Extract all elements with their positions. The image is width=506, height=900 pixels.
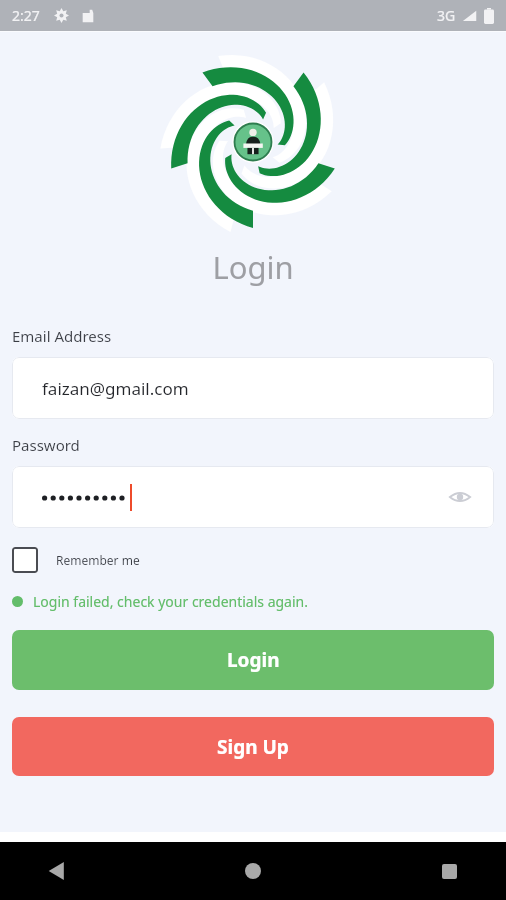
button[interactable]: Recent apps bbox=[426, 848, 472, 894]
button[interactable]: Show password bbox=[12, 466, 494, 528]
button[interactable]: Show password bbox=[445, 482, 475, 512]
staticText: 3G bbox=[437, 6, 456, 25]
staticText: Login failed, check your credentials aga… bbox=[33, 592, 308, 611]
button[interactable]: faizan@gmail.com bbox=[12, 357, 494, 419]
staticText: Login bbox=[0, 246, 506, 288]
staticText: Email Address bbox=[12, 326, 112, 346]
button[interactable]: Back bbox=[34, 848, 80, 894]
staticText: 2:27 bbox=[12, 6, 40, 25]
staticText: faizan@gmail.com bbox=[42, 377, 189, 400]
button[interactable]: Remember me bbox=[12, 547, 140, 573]
staticText: Sign Up bbox=[217, 734, 289, 760]
staticText: Login bbox=[227, 647, 280, 673]
staticText: Remember me bbox=[56, 552, 140, 568]
button[interactable]: Sign Up bbox=[12, 717, 494, 776]
staticText: Password bbox=[12, 435, 80, 455]
button[interactable]: Login bbox=[12, 630, 494, 690]
button[interactable]: Home bbox=[230, 848, 276, 894]
